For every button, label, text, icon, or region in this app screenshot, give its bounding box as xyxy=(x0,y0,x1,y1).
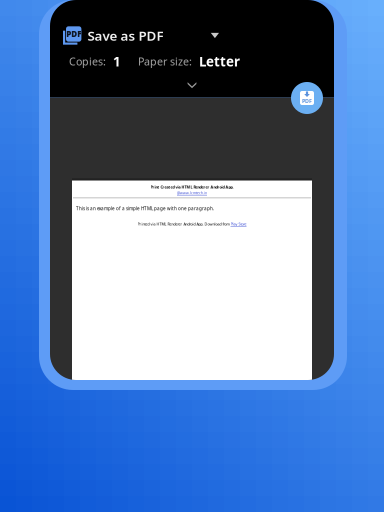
staticText: Paper size: xyxy=(138,54,192,68)
staticText: PDF xyxy=(302,97,312,105)
staticText: @www.lcmtech.in xyxy=(177,191,207,195)
button[interactable]: PDF xyxy=(50,25,229,45)
button[interactable]: Expand print options xyxy=(170,78,214,92)
staticText: Print Created via HTML Renderer Android … xyxy=(150,184,233,190)
staticText: 1 xyxy=(113,52,121,70)
staticText: This is an example of a simple HTML page… xyxy=(76,205,214,211)
staticText: Printed via HTML Renderer Android App, D… xyxy=(137,221,230,226)
button[interactable]: @www.lcmtech.in xyxy=(177,191,207,195)
button[interactable]: Play Store xyxy=(230,221,246,226)
staticText: Letter xyxy=(199,52,240,70)
button[interactable]: Save as PDF xyxy=(291,82,323,114)
staticText: Play Store xyxy=(230,221,246,226)
staticText: PDF xyxy=(66,29,81,39)
staticText: Copies: xyxy=(69,54,106,68)
staticText: Save as PDF xyxy=(87,27,163,44)
